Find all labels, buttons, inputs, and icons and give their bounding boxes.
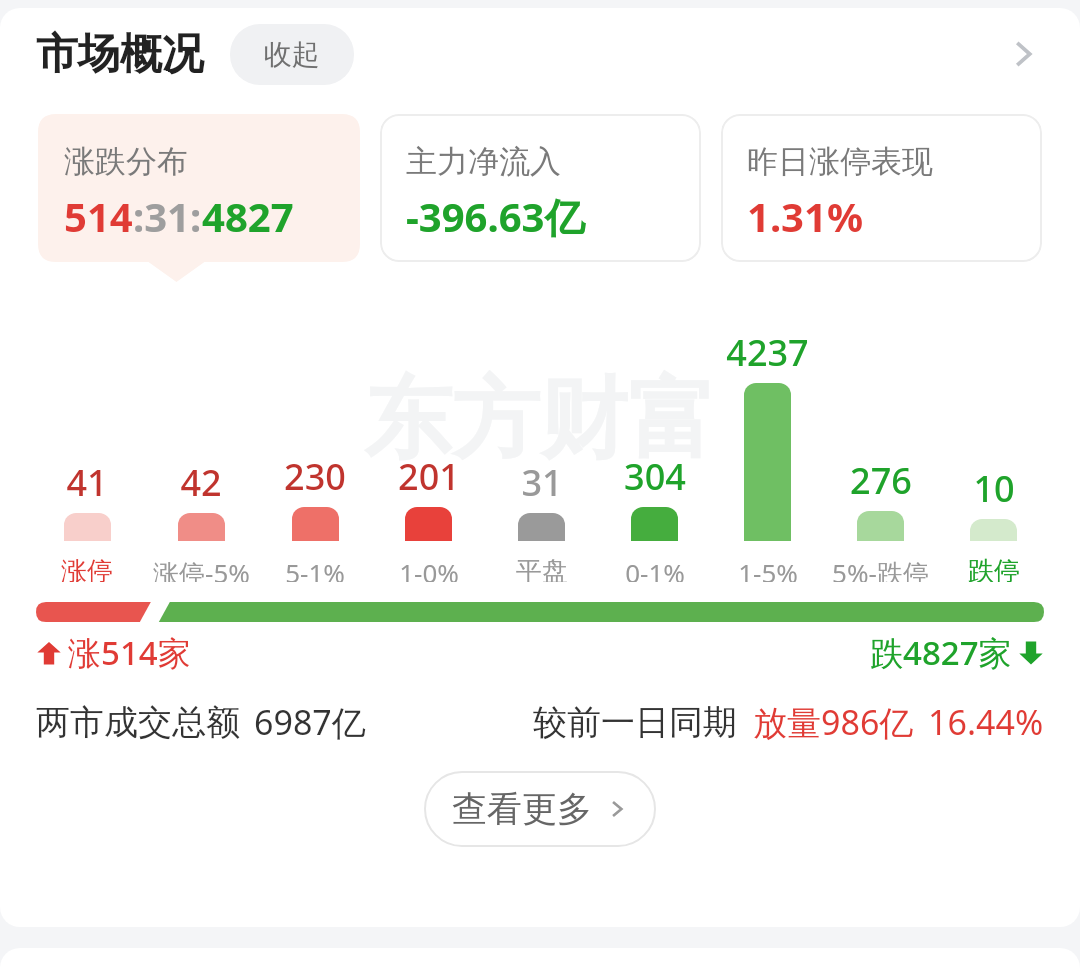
staticText: :31: xyxy=(133,189,202,243)
staticText: 4827 xyxy=(202,189,294,243)
staticText: 16.44% xyxy=(928,699,1044,745)
staticText: 230 xyxy=(284,452,346,501)
button[interactable]: 涨跌分布 xyxy=(38,114,360,282)
staticText: 涨跌分布 xyxy=(64,142,188,181)
staticText: 跌4827家 xyxy=(870,630,1012,675)
staticText: 涨停-5% xyxy=(153,555,250,582)
staticText: 1-5% xyxy=(738,555,798,582)
staticText: 两市成交总额 xyxy=(36,701,240,744)
staticText: 涨514家 xyxy=(68,630,191,675)
staticText: 放量986亿 xyxy=(753,699,914,745)
staticText: 4237 xyxy=(726,328,809,377)
staticText: -396.63亿 xyxy=(406,189,585,244)
staticText: 涨停 xyxy=(61,555,113,582)
staticText: 1.31% xyxy=(747,189,863,243)
staticText: 304 xyxy=(624,452,686,501)
button[interactable]: 查看更多 xyxy=(408,771,672,847)
staticText: 东方财富 xyxy=(364,364,716,475)
staticText: 0-1% xyxy=(625,555,685,582)
staticText: 276 xyxy=(850,456,912,505)
staticText: 41 xyxy=(66,458,108,507)
staticText: 31 xyxy=(521,458,563,507)
staticText: 5%-跌停 xyxy=(832,555,929,582)
staticText: 收起 xyxy=(264,37,320,72)
button[interactable]: 主力净流入 xyxy=(380,114,701,262)
button[interactable]: 收起 xyxy=(230,24,354,85)
staticText: 平盘 xyxy=(516,555,568,582)
staticText: 201 xyxy=(398,452,460,501)
staticText: 42 xyxy=(180,458,222,507)
staticText: 6987亿 xyxy=(254,699,366,745)
staticText: 市场概况 xyxy=(36,28,204,81)
staticText: 1-0% xyxy=(399,555,459,582)
button[interactable]: 昨日涨停表现 xyxy=(721,114,1042,262)
button[interactable]: 查看详情 xyxy=(992,23,1054,85)
staticText: 10 xyxy=(973,464,1015,513)
staticText: 较前一日同期 xyxy=(533,701,737,744)
staticText: 跌停 xyxy=(968,555,1020,582)
staticText: 主力净流入 xyxy=(406,142,561,181)
staticText: 昨日涨停表现 xyxy=(747,142,933,181)
staticText: 查看更多 xyxy=(452,787,592,831)
staticText: 514 xyxy=(64,189,133,243)
staticText: 5-1% xyxy=(285,555,345,582)
